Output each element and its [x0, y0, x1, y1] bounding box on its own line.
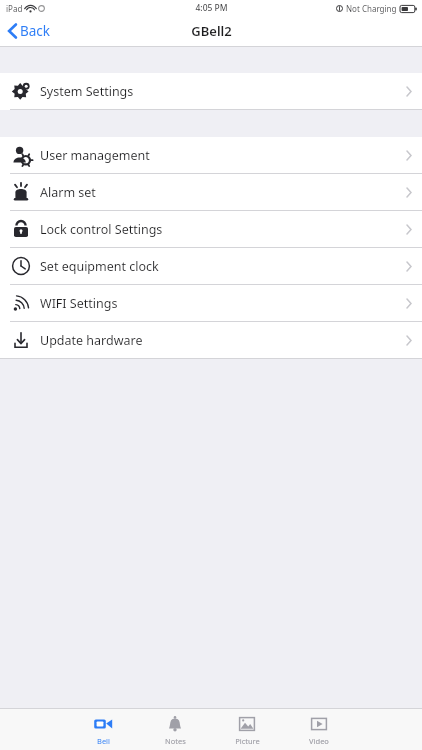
- button[interactable]: Back: [0, 16, 61, 46]
- button[interactable]: Video: [293, 709, 345, 750]
- button[interactable]: User management: [0, 137, 422, 173]
- button[interactable]: Picture: [221, 709, 273, 750]
- staticText: System Settings: [40, 83, 134, 100]
- staticText: WIFI Settings: [40, 295, 118, 312]
- button[interactable]: Lock control Settings: [0, 211, 422, 247]
- button[interactable]: Update hardware: [0, 322, 422, 358]
- staticText: Picture: [235, 736, 260, 746]
- staticText: Set equipment clock: [40, 258, 159, 275]
- staticText: Alarm set: [40, 184, 96, 201]
- button[interactable]: Bell: [77, 709, 129, 750]
- staticText: Bell: [97, 736, 110, 746]
- staticText: Not Charging: [346, 3, 397, 14]
- button[interactable]: Alarm set: [0, 174, 422, 210]
- button[interactable]: Set equipment clock: [0, 248, 422, 284]
- staticText: Back: [20, 22, 51, 40]
- button[interactable]: WIFI Settings: [0, 285, 422, 321]
- staticText: 4:05 PM: [195, 2, 228, 14]
- staticText: GBell2: [191, 22, 232, 40]
- staticText: User management: [40, 147, 150, 164]
- staticText: Update hardware: [40, 332, 143, 349]
- button[interactable]: System Settings: [0, 73, 422, 109]
- staticText: Video: [309, 736, 329, 746]
- button[interactable]: Notes: [149, 709, 201, 750]
- staticText: Lock control Settings: [40, 221, 163, 238]
- staticText: iPad: [6, 3, 23, 14]
- staticText: Notes: [165, 736, 186, 746]
